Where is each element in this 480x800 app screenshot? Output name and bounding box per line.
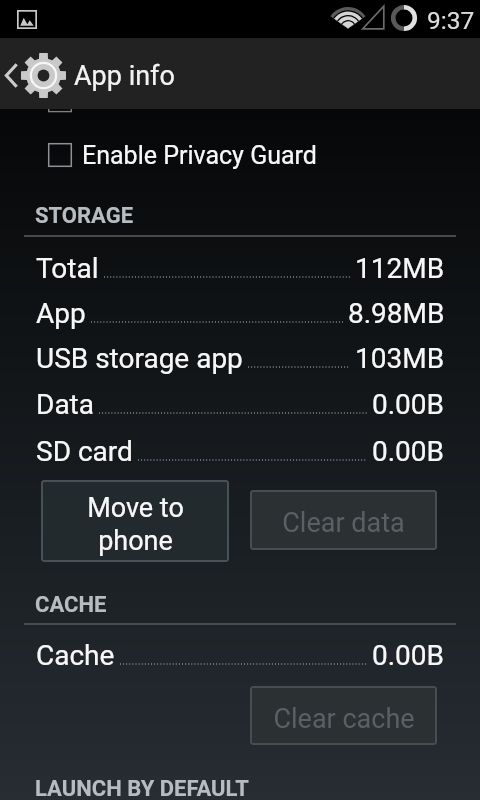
staticText: 9:37 (427, 6, 475, 35)
staticText: 112MB (355, 252, 445, 285)
button[interactable]: Total (0, 249, 480, 287)
button[interactable]: App (0, 294, 480, 332)
button[interactable]: SD card (0, 432, 480, 470)
button[interactable]: Move to phone (41, 480, 229, 562)
staticText: USB storage app (36, 342, 243, 375)
staticText: Data (36, 388, 94, 421)
other: Screenshot (17, 10, 37, 29)
other: Wi-Fi (333, 7, 363, 29)
staticText: 0.00B (372, 639, 445, 672)
staticText: Cache (36, 639, 115, 672)
staticText: Enable Privacy Guard (82, 141, 317, 170)
staticText: Total (36, 252, 99, 285)
button[interactable]: Clear cache (250, 686, 437, 745)
staticText: 0.00B (372, 388, 445, 421)
button[interactable]: Cache (0, 636, 480, 674)
button[interactable]: Clear data (250, 490, 437, 550)
staticText: CACHE (35, 592, 107, 618)
staticText: Clear data (282, 507, 405, 539)
other: Battery (390, 4, 418, 32)
staticText: STORAGE (35, 203, 134, 229)
staticText: 103MB (355, 342, 445, 375)
button[interactable]: Enable Privacy Guard (0, 132, 480, 178)
button[interactable]: USB storage app (0, 339, 480, 377)
staticText: 0.00B (372, 435, 445, 468)
staticText: App info (74, 60, 175, 92)
staticText: App (36, 297, 86, 330)
button[interactable]: Data (0, 385, 480, 423)
staticText: Clear cache (273, 703, 415, 735)
button[interactable]: Navigate up (0, 38, 70, 109)
staticText: 8.98MB (348, 297, 445, 330)
staticText: SD card (36, 435, 133, 468)
other: Signal (361, 5, 385, 30)
staticText: LAUNCH BY DEFAULT (35, 776, 249, 800)
staticText: Move to phone (87, 492, 184, 557)
